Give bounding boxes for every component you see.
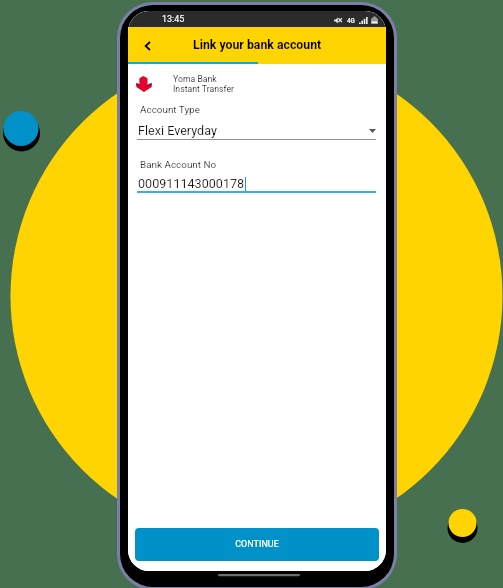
staticText: Flexi Everyday (138, 123, 369, 138)
button[interactable]: Back (134, 33, 160, 59)
staticText: Yoma Bank (173, 74, 217, 84)
staticText: 13:45 (162, 14, 185, 24)
staticText: Instant Transfer (173, 84, 234, 94)
staticText: Link your bank account (193, 38, 322, 52)
staticText: 000911143000178 (138, 176, 245, 191)
staticText: CONTINUE (235, 539, 279, 550)
staticText: 4G (347, 17, 355, 24)
staticText: Bank Account No (140, 159, 217, 171)
staticText: Account Type (140, 104, 200, 116)
button[interactable]: CONTINUE (135, 528, 379, 561)
